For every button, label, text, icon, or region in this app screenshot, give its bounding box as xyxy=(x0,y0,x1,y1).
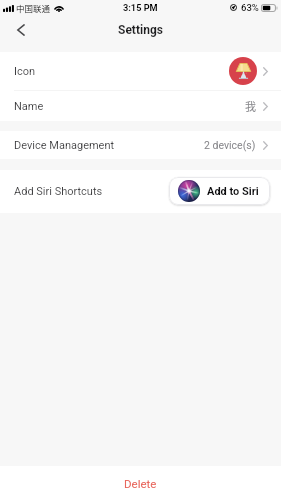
staticText: Delete xyxy=(124,477,157,490)
button[interactable]: Name xyxy=(0,91,281,121)
button[interactable]: Add to Siri xyxy=(169,177,270,205)
button[interactable]: Device Management xyxy=(0,131,281,159)
staticText: 3:15 PM xyxy=(123,2,158,13)
staticText: Add to Siri xyxy=(207,185,259,198)
staticText: 2 device(s) xyxy=(204,139,256,151)
staticText: 中国联通 xyxy=(16,2,51,14)
staticText: 我 xyxy=(245,98,256,114)
button[interactable]: Icon xyxy=(0,52,281,90)
button[interactable]: Delete xyxy=(0,466,281,500)
button[interactable]: Back xyxy=(8,17,34,43)
staticText: Icon xyxy=(14,65,36,78)
staticText: Add Siri Shortcuts xyxy=(14,185,103,198)
staticText: Settings xyxy=(118,23,163,37)
staticText: Name xyxy=(14,100,44,113)
staticText: 63% xyxy=(241,2,259,13)
staticText: Device Management xyxy=(14,139,115,152)
